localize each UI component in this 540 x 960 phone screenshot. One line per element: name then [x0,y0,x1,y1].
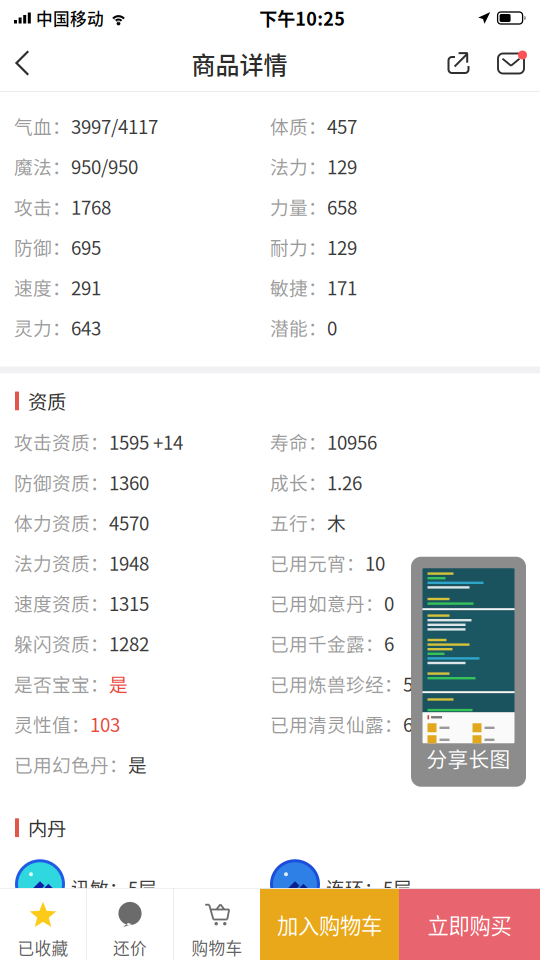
staticText: 下午10:25 [259,5,345,31]
staticText: 4570 [109,509,149,536]
staticText: 商品详情 [191,46,287,81]
staticText: 1360 [109,468,149,495]
staticText: 10 [365,549,385,576]
staticText: 速度： [14,274,71,301]
button[interactable]: 立即购买 [399,889,540,960]
staticText: 资质 [28,387,66,415]
staticText: 已用清灵仙露： [270,710,403,737]
staticText: 气血： [14,112,71,139]
staticText: 已用幻色丹： [14,751,128,778]
staticText: 成长： [270,468,327,495]
staticText: 已收藏 [17,935,68,960]
staticText: 五行： [270,509,327,536]
button[interactable]: Back [0,36,46,91]
staticText: 分享长图 [426,743,510,773]
staticText: 已用千金露： [270,630,384,657]
staticText: 购物车 [191,935,242,960]
staticText: 内丹 [28,814,66,842]
staticText: 立即购买 [427,909,511,940]
button[interactable]: Messages [485,36,540,90]
button[interactable]: 已收藏 [0,888,86,960]
staticText: 6 [403,710,413,737]
staticText: 防御资质： [14,468,109,495]
staticText: 129 [327,153,357,180]
button[interactable]: 加入购物车 [260,889,399,960]
staticText: 1768 [71,193,111,220]
staticText: 291 [71,274,101,301]
button[interactable]: 分享长图 [411,557,526,787]
staticText: 10956 [327,428,377,455]
staticText: 力量： [270,193,327,220]
staticText: 5 [403,670,413,697]
staticText: ¥ [126,903,134,924]
staticText: 中国移动 [36,6,104,30]
staticText: 是 [109,670,128,697]
button[interactable]: Share [433,36,485,90]
staticText: 灵力： [14,314,71,341]
staticText: 防御： [14,233,71,260]
staticText: 魔法： [14,153,71,180]
staticText: 171 [327,274,357,301]
staticText: 3997/4117 [71,112,158,139]
staticText: 还价 [113,935,147,960]
staticText: 已用如意丹： [270,589,384,616]
staticText: 法力： [270,153,327,180]
staticText: 体力资质： [14,509,109,536]
staticText: 讯敏：5层 [71,874,157,901]
staticText: 灵性值： [14,710,90,737]
staticText: 寿命： [270,428,327,455]
staticText: 加入购物车 [277,909,382,940]
staticText: 是否宝宝： [14,670,109,697]
staticText: 木 [327,509,346,536]
staticText: 695 [71,233,101,260]
staticText: 1.26 [327,468,362,495]
staticText: 643 [71,314,101,341]
staticText: 1315 [109,589,149,616]
staticText: 已用炼兽珍经： [270,670,403,697]
staticText: 0 [327,314,337,341]
staticText: 攻击： [14,193,71,220]
staticText: 已用元宵： [270,549,365,576]
button[interactable]: ¥ [87,888,173,960]
staticText: 658 [327,193,357,220]
button[interactable]: 购物车 [174,888,260,960]
staticText: 950/950 [71,153,138,180]
staticText: 1948 [109,549,149,576]
staticText: 攻击资质： [14,428,109,455]
staticText: 体质： [270,112,327,139]
staticText: 1595 +14 [109,428,183,455]
staticText: 103 [90,710,120,737]
staticText: 1282 [109,630,149,657]
staticText: 潜能： [270,314,327,341]
staticText: 躲闪资质： [14,630,109,657]
staticText: 敏捷： [270,274,327,301]
staticText: 129 [327,233,357,260]
staticText: 连环：5层 [326,874,412,901]
staticText: 6 [384,630,394,657]
staticText: 法力资质： [14,549,109,576]
staticText: 耐力： [270,233,327,260]
staticText: 速度资质： [14,589,109,616]
staticText: 0 [384,589,394,616]
staticText: 457 [327,112,357,139]
staticText: 是 [128,751,147,778]
